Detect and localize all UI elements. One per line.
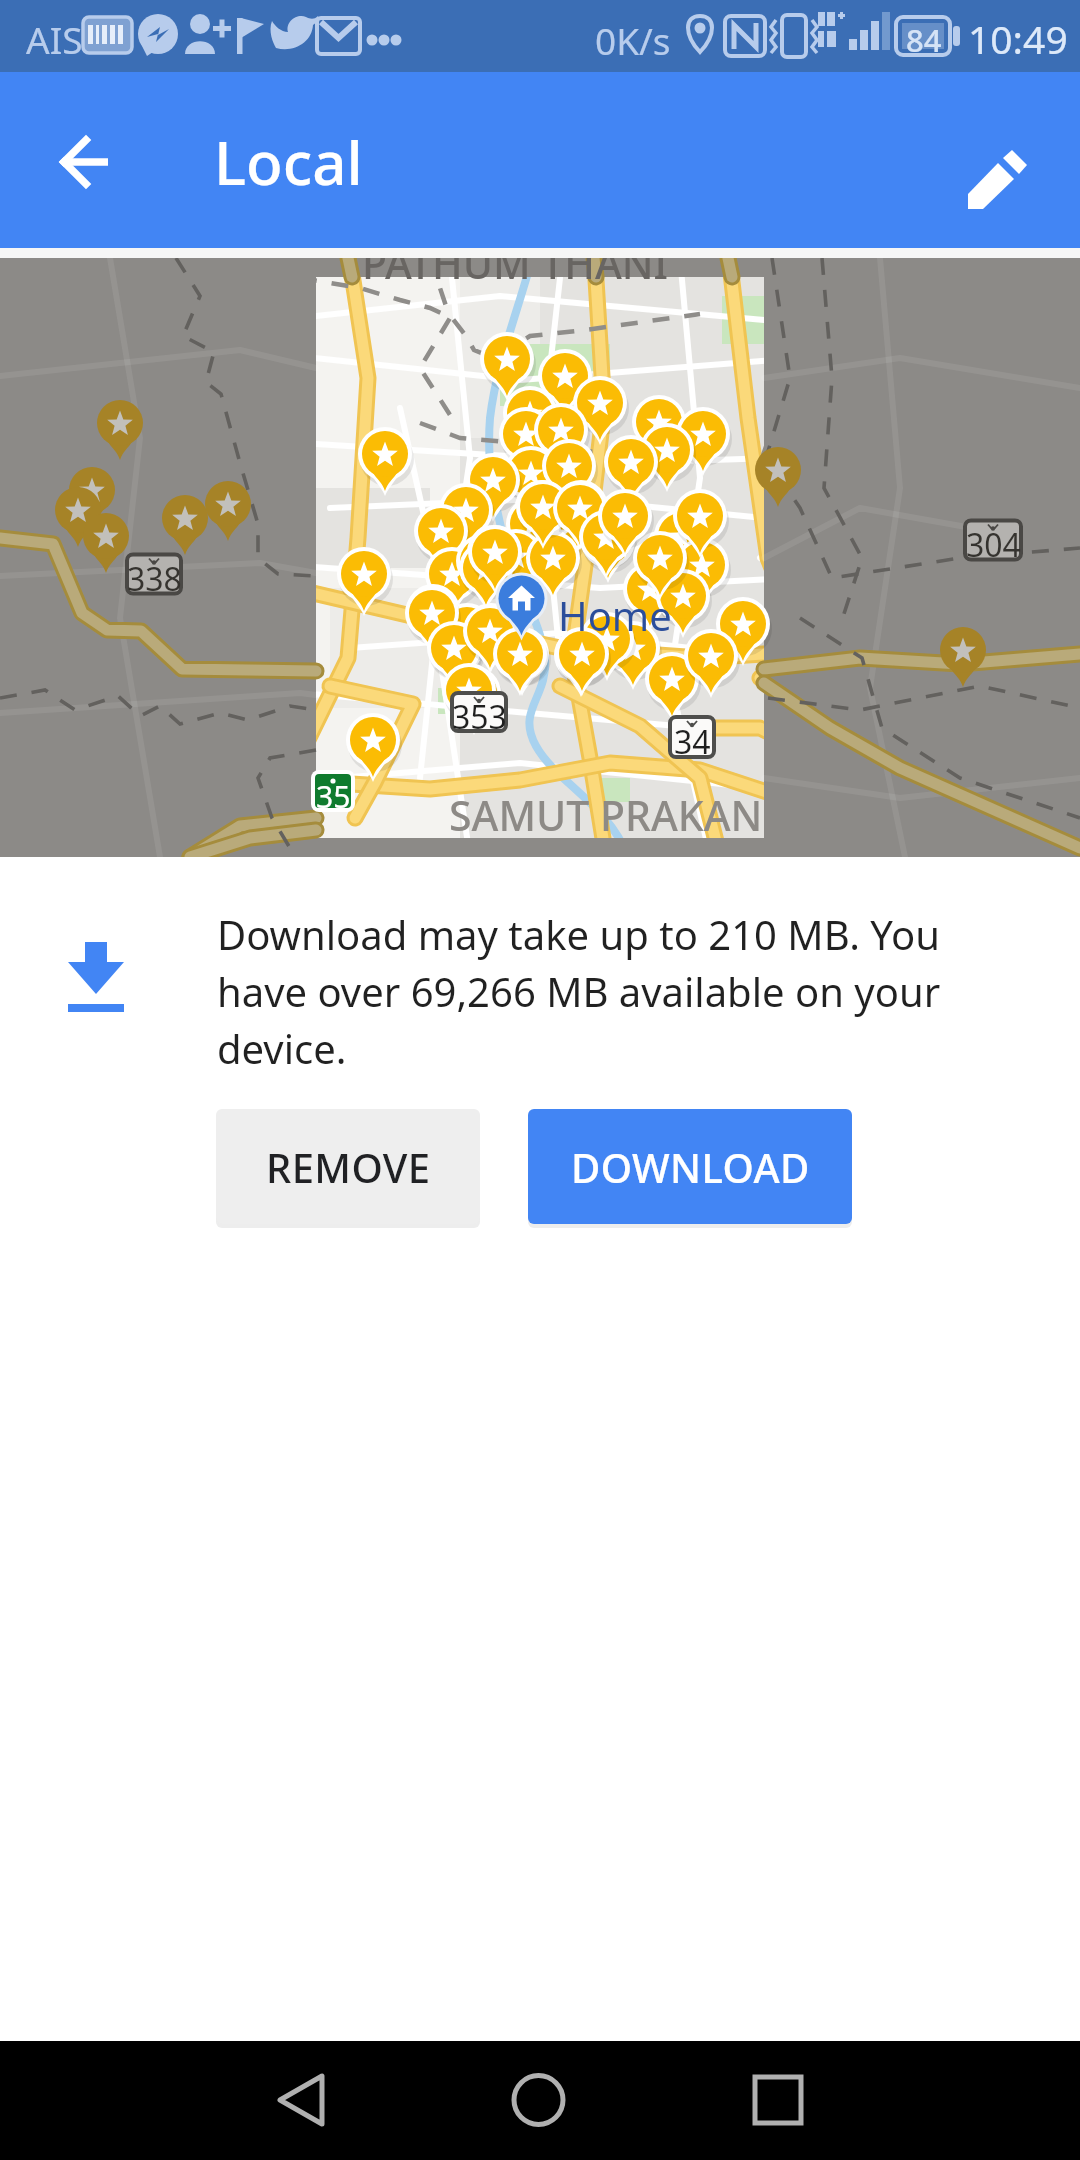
staticText: 304 — [966, 523, 1021, 567]
button[interactable]: Back — [36, 112, 132, 208]
staticText: Download may take up to 210 MB. You have… — [217, 907, 1037, 1075]
staticText: 35 — [316, 776, 351, 817]
button[interactable]: REMOVE — [216, 1109, 480, 1224]
staticText: REMOVE — [266, 1140, 431, 1194]
staticText: 0K/s — [595, 15, 671, 65]
staticText: SAMUT PRAKAN — [449, 787, 763, 843]
staticText: AIS — [26, 14, 83, 64]
button[interactable]: Map of the area to download — [0, 258, 1080, 857]
button[interactable]: DOWNLOAD — [528, 1109, 852, 1224]
button[interactable]: Back — [264, 2063, 338, 2137]
button[interactable]: Home — [502, 2063, 576, 2137]
staticText: PATHUM THANI — [362, 258, 669, 291]
staticText: Home — [558, 588, 672, 642]
staticText: DOWNLOAD — [571, 1140, 810, 1194]
staticText: Local — [214, 121, 363, 203]
staticText: 34 — [674, 720, 711, 764]
staticText: 338 — [127, 557, 182, 601]
button[interactable]: Recent apps — [742, 2063, 816, 2137]
staticText: 10:49 — [968, 12, 1068, 65]
button[interactable]: Edit — [950, 132, 1046, 228]
staticText: 353 — [452, 695, 507, 739]
staticText: 84 — [906, 19, 942, 61]
